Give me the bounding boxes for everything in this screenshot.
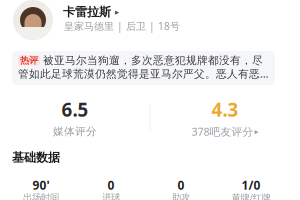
button[interactable]: 4.3 [150,96,299,140]
staticText: 0 [177,177,184,193]
button[interactable]: 卡雷拉斯 [63,5,193,19]
staticText: 皇家马德里 | 后卫 | 18号 [64,19,180,33]
staticText: 媒体评分 [53,125,97,138]
button[interactable]: 热评 [12,51,275,85]
staticText: 热评 [20,55,38,66]
staticText: 6.5 [61,97,88,122]
staticText: 助攻 [172,192,190,200]
staticText: 4.3 [211,97,238,122]
staticText: ▸ [254,127,258,136]
staticText: 进球 [102,192,120,200]
staticText: 90' [32,177,49,193]
staticText: 黄牌/红牌 [231,191,270,200]
staticText: ▸ [115,7,119,17]
staticText: 基础数据 [12,150,60,165]
button[interactable]: 6.5 [0,96,149,140]
staticText: 1/0 [241,177,260,193]
staticText: 管如此足球荒漠仍然觉得是亚马尔严父。恶人有恶… [18,66,268,81]
staticText: 0 [107,177,114,193]
staticText: 卡雷拉斯 [63,4,111,19]
staticText: 出场时间 [23,192,59,200]
staticText: 378吧友评分 [191,124,253,139]
staticText: 被亚马尔当狗遛，多次恶意犯规牌都没有，尽 [43,54,263,67]
